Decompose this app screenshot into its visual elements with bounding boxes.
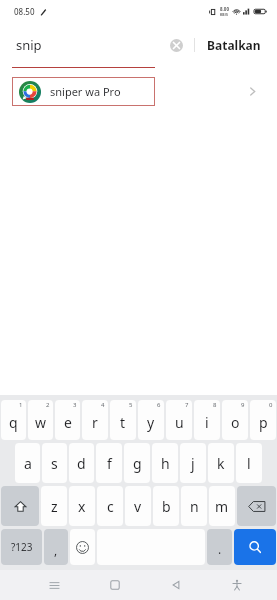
button[interactable]: Period (207, 529, 232, 565)
staticText: y (147, 413, 155, 432)
staticText: i (205, 413, 209, 432)
button[interactable]: r (82, 400, 108, 440)
button[interactable]: w (28, 400, 53, 440)
staticText: h (161, 454, 170, 473)
staticText: e (64, 413, 72, 432)
button[interactable]: p (250, 400, 276, 440)
button[interactable]: d (69, 443, 94, 483)
staticText: l (247, 454, 251, 473)
staticText: , (54, 542, 58, 558)
button[interactable]: Recents (39, 570, 69, 600)
button[interactable]: Accessibility (222, 570, 252, 600)
staticText: c (107, 497, 114, 516)
staticText: . (218, 541, 222, 557)
button[interactable]: q (1, 400, 26, 440)
staticText: d (77, 454, 86, 473)
staticText: p (259, 413, 268, 432)
staticText: q (9, 413, 18, 432)
button[interactable]: l (236, 443, 262, 483)
staticText: x (78, 497, 86, 516)
staticText: r (92, 413, 98, 432)
staticText: 3 (73, 401, 77, 409)
staticText: 0 (269, 401, 273, 409)
button[interactable]: Emoji (70, 529, 95, 565)
button[interactable]: Comma (44, 529, 68, 565)
button[interactable]: y (138, 400, 164, 440)
staticText: 8 (213, 401, 217, 409)
staticText: 7 (185, 401, 189, 409)
button[interactable]: v (125, 486, 151, 526)
button[interactable]: b (153, 486, 179, 526)
button[interactable]: m (209, 486, 235, 526)
button[interactable]: a (15, 443, 40, 483)
staticText: b (162, 497, 171, 516)
button[interactable]: Shift (1, 486, 39, 526)
button[interactable]: k (208, 443, 234, 483)
staticText: g (133, 454, 142, 473)
button[interactable]: z (41, 486, 67, 526)
staticText: 2 (46, 401, 50, 409)
button[interactable]: t (110, 400, 136, 440)
staticText: o (231, 413, 240, 432)
button[interactable]: i (194, 400, 220, 440)
staticText: k (217, 454, 225, 473)
staticText: 1 (19, 401, 23, 409)
button[interactable]: g (124, 443, 150, 483)
button[interactable]: x (69, 486, 95, 526)
staticText: 4 (101, 401, 105, 409)
staticText: z (51, 497, 58, 516)
staticText: 6 (157, 401, 161, 409)
staticText: v (134, 497, 142, 516)
staticText: 9 (241, 401, 245, 409)
button[interactable]: ?123 (1, 529, 42, 565)
staticText: a (24, 454, 32, 473)
staticText: t (120, 413, 126, 432)
staticText: sniper wa Pro (50, 84, 121, 99)
button[interactable]: sniper wa Pro (12, 77, 155, 106)
staticText: u (175, 413, 184, 432)
button[interactable]: h (152, 443, 178, 483)
staticText: w (35, 413, 47, 432)
button[interactable]: Backspace (237, 486, 276, 526)
button[interactable]: e (55, 400, 80, 440)
button[interactable]: Batalkan (203, 33, 265, 57)
button[interactable]: j (180, 443, 206, 483)
staticText: 5 (129, 401, 133, 409)
staticText: n (190, 497, 199, 516)
button[interactable]: s (42, 443, 67, 483)
button[interactable]: n (181, 486, 207, 526)
button[interactable]: Open (242, 81, 262, 101)
staticText: KB/S (220, 12, 229, 17)
staticText: Batalkan (207, 37, 261, 53)
staticText: 08.50 (14, 6, 35, 17)
button[interactable]: c (97, 486, 123, 526)
button[interactable]: Back (161, 570, 191, 600)
staticText: ?123 (11, 540, 33, 554)
staticText: 8.00 (220, 6, 229, 12)
staticText: j (191, 454, 195, 473)
button[interactable]: o (222, 400, 248, 440)
button[interactable]: Home (100, 570, 130, 600)
button[interactable]: Clear search (167, 36, 185, 54)
button[interactable]: Search (234, 529, 276, 565)
staticText: snip (16, 36, 42, 54)
staticText: f (107, 454, 112, 473)
staticText: s (51, 454, 58, 473)
button[interactable]: f (96, 443, 122, 483)
staticText: m (215, 497, 229, 516)
button[interactable]: u (166, 400, 192, 440)
